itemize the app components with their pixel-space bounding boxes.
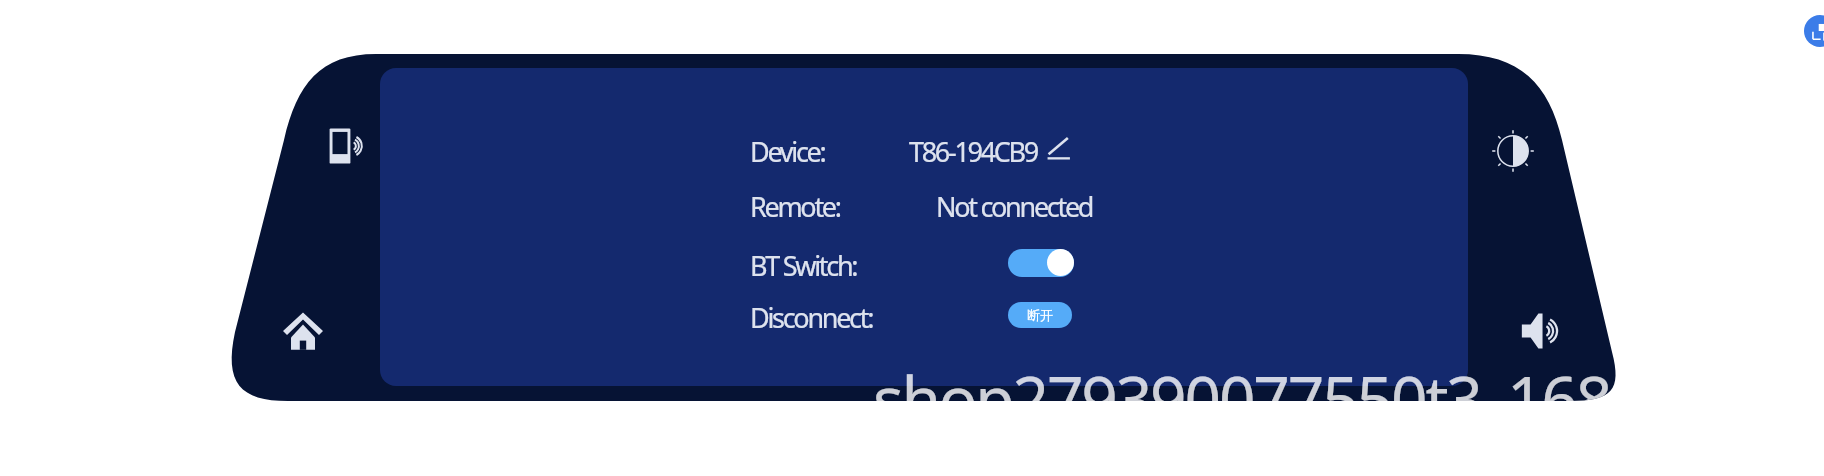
staticText: Disconnect: bbox=[750, 299, 873, 336]
button[interactable]: Disconnect bbox=[1008, 302, 1072, 328]
staticText: Remote: bbox=[750, 188, 840, 225]
button[interactable]: Brightness bbox=[1485, 123, 1541, 179]
button[interactable]: Volume bbox=[1515, 303, 1571, 359]
button[interactable]: Share bbox=[1804, 15, 1824, 47]
staticText: Device: bbox=[750, 133, 825, 170]
staticText: BT Switch: bbox=[750, 247, 857, 284]
staticText: shop279390077550t3_168 bbox=[873, 355, 1611, 442]
staticText: Not connected bbox=[936, 188, 1093, 225]
staticText: T86-194CB9 bbox=[909, 133, 1037, 170]
button[interactable]: Remote: bbox=[740, 183, 1110, 227]
button[interactable]: Bluetooth pairing bbox=[320, 118, 376, 174]
button[interactable]: Disconnect: bbox=[750, 299, 873, 336]
button[interactable]: BT Switch: bbox=[750, 247, 857, 284]
button[interactable]: Bluetooth switch, on bbox=[1008, 249, 1074, 277]
staticText: 断开 bbox=[1027, 307, 1053, 323]
button[interactable]: Rename device bbox=[1044, 134, 1074, 164]
button[interactable]: Home bbox=[275, 303, 331, 359]
button[interactable]: Device: bbox=[740, 128, 1040, 172]
